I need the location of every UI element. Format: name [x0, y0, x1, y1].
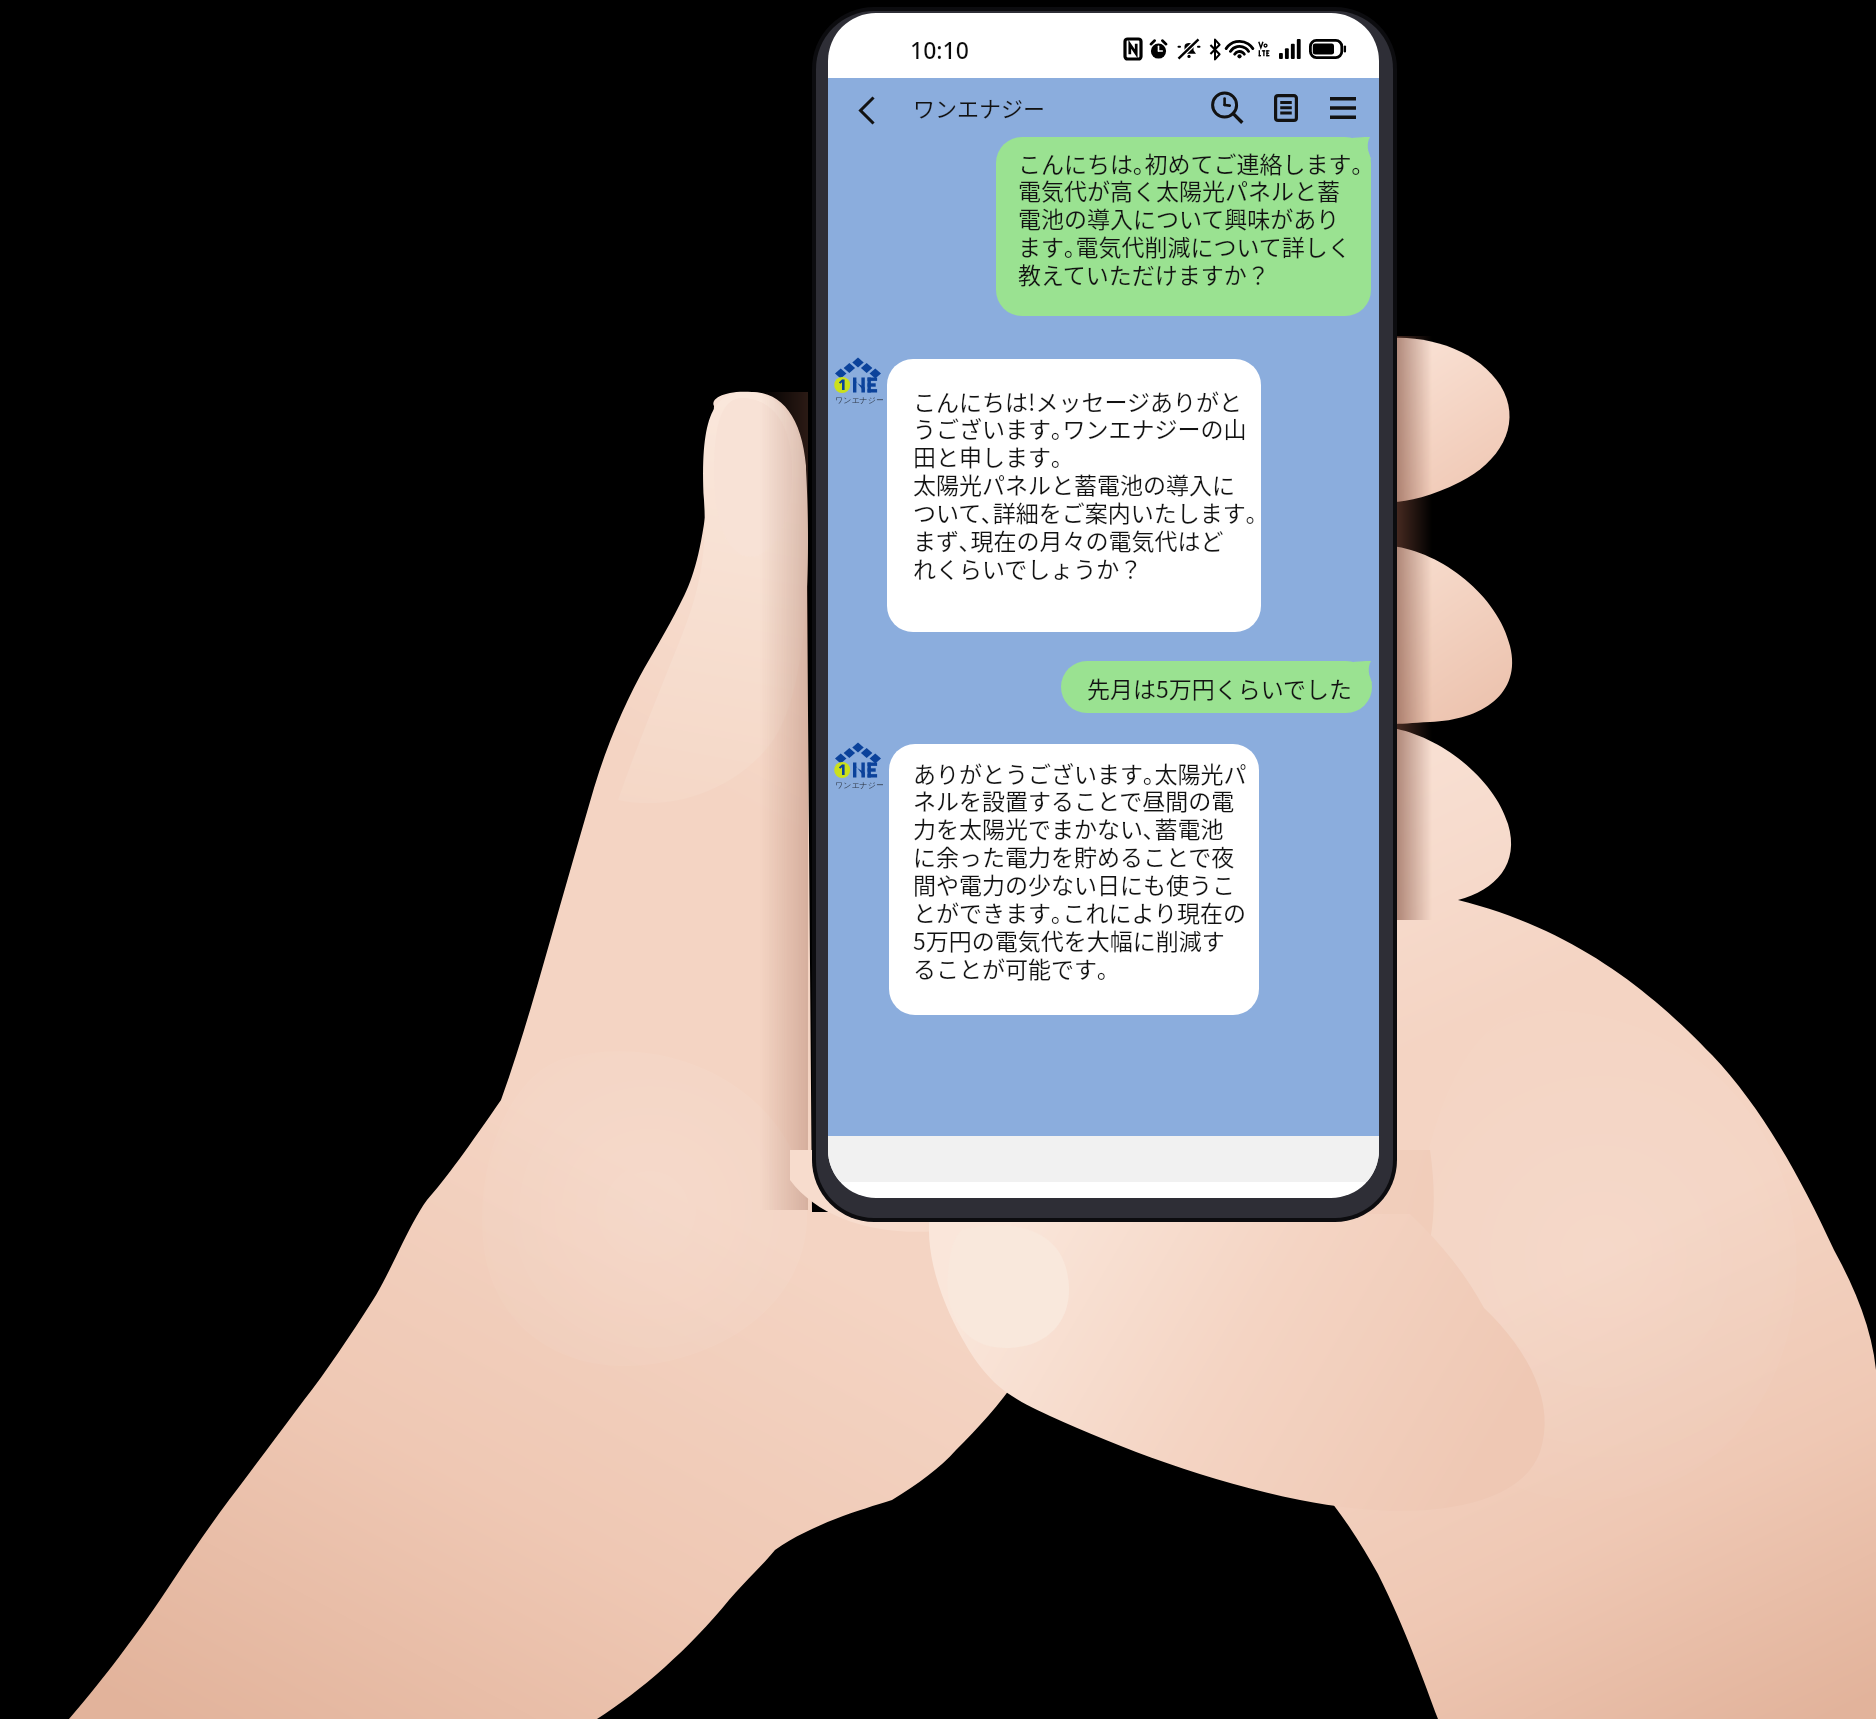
- staticText: ワンエナジー: [835, 780, 883, 790]
- staticText: ありがとうございます｡太陽光パ ネルを設置することで昼間の電 力を太陽光でまかな…: [913, 756, 1247, 985]
- staticText: こんにちは!メッセージありがと うございます｡ワンエナジーの山 田と申します｡ …: [913, 384, 1258, 585]
- button[interactable]: こんにちは｡初めてご連絡します｡ 電気代が高く太陽光パネルと蓄 電池の導入につい…: [996, 137, 1371, 316]
- staticText: 10:10: [910, 34, 969, 65]
- button[interactable]: Notes: [1262, 84, 1310, 132]
- button[interactable]: ありがとうございます｡太陽光パ ネルを設置することで昼間の電 力を太陽光でまかな…: [889, 744, 1259, 1015]
- button[interactable]: こんにちは!メッセージありがと うございます｡ワンエナジーの山 田と申します｡ …: [887, 359, 1261, 632]
- button[interactable]: Menu: [1318, 84, 1368, 132]
- button[interactable]: Message input: [828, 1136, 1379, 1182]
- button[interactable]: Search: [1202, 84, 1252, 132]
- button[interactable]: Back: [840, 87, 892, 133]
- staticText: こんにちは｡初めてご連絡します｡ 電気代が高く太陽光パネルと蓄 電池の導入につい…: [1018, 146, 1363, 291]
- button[interactable]: ワンエナジー: [913, 91, 1046, 123]
- staticText: ワンエナジー: [835, 395, 883, 405]
- staticText: 先月は5万円くらいでした: [1087, 671, 1353, 704]
- button[interactable]: 先月は5万円くらいでした: [1061, 661, 1372, 713]
